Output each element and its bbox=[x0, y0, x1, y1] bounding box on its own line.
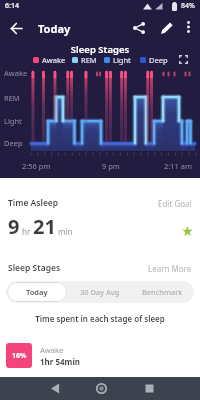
staticText: Awake bbox=[42, 55, 66, 65]
button[interactable] bbox=[131, 20, 147, 36]
staticText: 6:14 bbox=[5, 1, 19, 11]
staticText: Deep bbox=[4, 138, 23, 148]
button[interactable]: 30 Day Avg bbox=[68, 281, 131, 303]
button[interactable] bbox=[45, 378, 65, 398]
staticText: Benchmark bbox=[142, 287, 183, 297]
staticText: Awake bbox=[40, 345, 64, 355]
staticText: Time Asleep bbox=[8, 197, 59, 209]
button[interactable]: Sleep Stages bbox=[0, 262, 200, 274]
staticText: Deep bbox=[149, 55, 168, 65]
staticText: min bbox=[56, 226, 73, 237]
staticText: Today bbox=[38, 21, 71, 36]
staticText: hr bbox=[20, 226, 33, 237]
staticText: Light bbox=[113, 55, 131, 65]
staticText: Time spent in each stage of sleep bbox=[0, 313, 200, 324]
staticText: Awake bbox=[4, 68, 28, 78]
button[interactable]: Benchmark bbox=[131, 281, 194, 303]
staticText: 9 pm bbox=[102, 161, 120, 171]
staticText: 30 Day Avg bbox=[80, 287, 120, 297]
staticText: Sleep Stages bbox=[0, 43, 200, 56]
button[interactable] bbox=[8, 20, 24, 36]
button[interactable]: Today bbox=[7, 282, 67, 302]
staticText: Light bbox=[4, 116, 22, 126]
staticText: Edit Goal bbox=[158, 198, 192, 209]
staticText: 21 bbox=[33, 213, 56, 240]
staticText: 2:11 am bbox=[164, 161, 193, 171]
button[interactable]: 16% bbox=[0, 343, 200, 368]
button[interactable]: Time Asleep bbox=[0, 197, 200, 209]
staticText: REM bbox=[81, 55, 97, 65]
staticText: 16% bbox=[12, 351, 27, 361]
staticText: Today bbox=[26, 287, 48, 297]
staticText: 2:56 pm bbox=[22, 161, 51, 171]
button[interactable] bbox=[181, 20, 195, 34]
button[interactable] bbox=[91, 378, 111, 398]
staticText: 1hr 54min bbox=[40, 356, 80, 367]
button[interactable] bbox=[139, 378, 159, 398]
staticText: Learn More bbox=[148, 263, 192, 274]
staticText: REM bbox=[4, 93, 20, 103]
button[interactable] bbox=[176, 52, 190, 66]
staticText: Sleep Stages bbox=[8, 262, 61, 274]
staticText: 84% bbox=[181, 1, 195, 11]
staticText: 9 bbox=[8, 213, 20, 240]
button[interactable] bbox=[159, 20, 175, 36]
